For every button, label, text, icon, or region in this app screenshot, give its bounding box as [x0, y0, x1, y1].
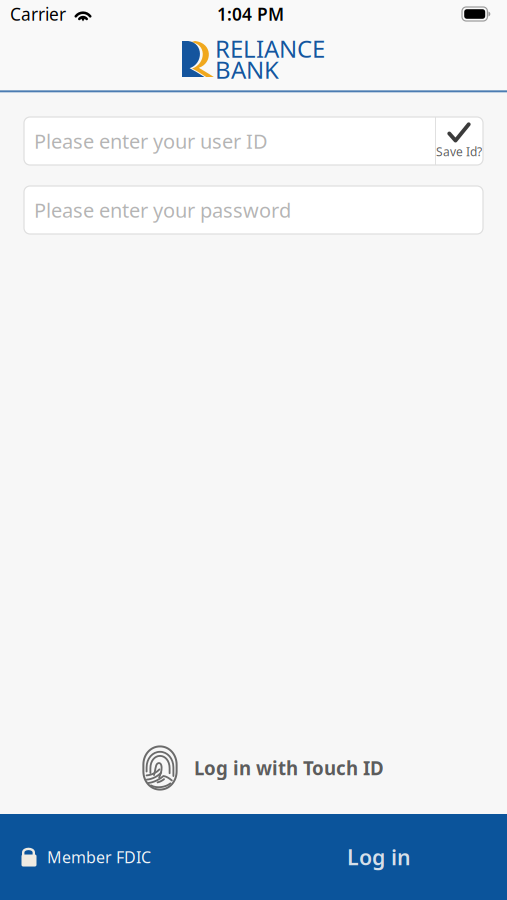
- button[interactable]: Log in with Touch ID: [111, 737, 396, 799]
- staticText: Log in with Touch ID: [194, 756, 384, 780]
- button[interactable]: Member FDIC: [20, 834, 151, 880]
- staticText: Member FDIC: [47, 846, 151, 868]
- button[interactable]: Log in: [331, 831, 427, 883]
- staticText: RELIANCE: [215, 33, 325, 64]
- staticText: 1:04 PM: [217, 2, 284, 25]
- staticText: BANK: [215, 54, 279, 85]
- button[interactable]: Save Id: [435, 117, 483, 165]
- staticText: Carrier: [10, 2, 66, 25]
- staticText: Log in: [347, 843, 411, 871]
- staticText: Please enter your password: [34, 197, 291, 223]
- staticText: Please enter your user ID: [34, 128, 268, 154]
- staticText: Save Id?: [436, 143, 482, 159]
